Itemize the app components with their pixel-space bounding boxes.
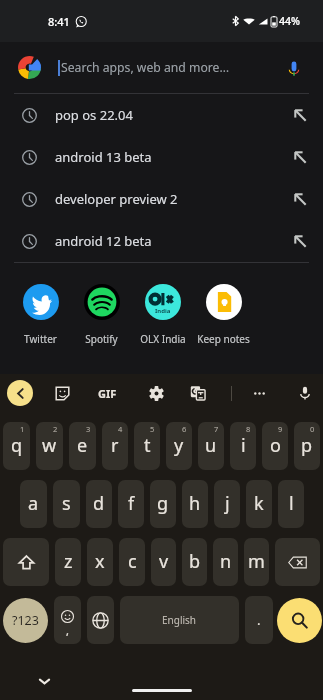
button[interactable]: y bbox=[166, 422, 192, 470]
staticText: OLX India bbox=[140, 332, 186, 346]
staticText: o bbox=[270, 433, 281, 458]
button[interactable]: x bbox=[87, 538, 113, 586]
staticText: p bbox=[301, 433, 313, 458]
button[interactable]: android 13 beta bbox=[0, 136, 323, 178]
staticText: r bbox=[111, 433, 119, 458]
button[interactable]: l bbox=[278, 480, 304, 528]
button[interactable]: e bbox=[69, 422, 96, 470]
button[interactable]: Emoji bbox=[54, 596, 81, 644]
staticText: b bbox=[189, 549, 201, 574]
button[interactable]: pop os 22.04 bbox=[0, 94, 323, 136]
staticText: e bbox=[77, 433, 88, 458]
button[interactable]: Search bbox=[277, 598, 322, 643]
button[interactable]: Keep notes bbox=[193, 284, 254, 346]
button[interactable]: GIF bbox=[98, 380, 117, 406]
button[interactable]: i bbox=[230, 422, 256, 470]
button[interactable]: Fill in android 13 beta bbox=[285, 142, 315, 172]
staticText: 5 bbox=[150, 424, 155, 434]
button[interactable]: a bbox=[20, 480, 47, 528]
staticText: v bbox=[159, 549, 169, 574]
button[interactable]: Shift bbox=[3, 538, 49, 586]
button[interactable]: . bbox=[245, 596, 273, 644]
staticText: l bbox=[289, 491, 294, 516]
staticText: n bbox=[220, 549, 232, 574]
staticText: k bbox=[254, 491, 264, 516]
staticText: m bbox=[248, 549, 265, 574]
staticText: . bbox=[257, 611, 261, 629]
button[interactable]: More options bbox=[246, 380, 272, 406]
button[interactable]: c bbox=[119, 538, 145, 586]
staticText: f bbox=[128, 491, 135, 516]
button[interactable]: q bbox=[3, 422, 30, 470]
staticText: u bbox=[205, 433, 217, 458]
staticText: android 13 beta bbox=[55, 148, 152, 166]
button[interactable]: ?123 bbox=[3, 598, 48, 643]
button[interactable]: Delete bbox=[275, 538, 320, 586]
button[interactable]: z bbox=[55, 538, 81, 586]
button[interactable]: Fill in pop os 22.04 bbox=[285, 100, 315, 130]
button[interactable]: Fill in android 12 beta bbox=[285, 226, 315, 256]
button[interactable]: developer preview 2 bbox=[0, 178, 323, 220]
button[interactable]: Fill in developer preview 2 bbox=[285, 184, 315, 214]
button[interactable]: w bbox=[36, 422, 63, 470]
button[interactable]: s bbox=[53, 480, 80, 528]
button[interactable]: k bbox=[246, 480, 272, 528]
staticText: English bbox=[162, 613, 197, 627]
button[interactable]: Change language bbox=[87, 596, 114, 644]
button[interactable]: o bbox=[262, 422, 288, 470]
button[interactable]: Hide keyboard bbox=[31, 668, 57, 694]
button[interactable]: n bbox=[213, 538, 238, 586]
button[interactable]: b bbox=[182, 538, 207, 586]
staticText: h bbox=[189, 491, 201, 516]
staticText: developer preview 2 bbox=[55, 190, 178, 208]
staticText: 9 bbox=[278, 424, 283, 434]
staticText: Search apps, web and more… bbox=[61, 59, 230, 76]
button[interactable]: u bbox=[198, 422, 224, 470]
staticText: Spotify bbox=[85, 332, 118, 346]
button[interactable]: Voice search bbox=[281, 55, 307, 81]
staticText: android 12 beta bbox=[55, 232, 152, 250]
staticText: i bbox=[241, 433, 246, 458]
staticText: Keep notes bbox=[197, 332, 250, 346]
staticText: 1 bbox=[20, 424, 25, 434]
staticText: j bbox=[225, 491, 230, 516]
button[interactable]: Back bbox=[7, 380, 33, 406]
button[interactable]: f bbox=[118, 480, 144, 528]
staticText: GIF bbox=[98, 386, 117, 401]
button[interactable]: android 12 beta bbox=[0, 220, 323, 262]
button[interactable]: j bbox=[214, 480, 240, 528]
staticText: 3 bbox=[86, 424, 91, 434]
button[interactable]: Settings bbox=[143, 380, 169, 406]
button[interactable]: Stickers bbox=[49, 380, 75, 406]
staticText: , bbox=[66, 623, 69, 638]
button[interactable]: r bbox=[102, 422, 128, 470]
staticText: c bbox=[128, 549, 137, 574]
button[interactable]: h bbox=[182, 480, 208, 528]
staticText: z bbox=[64, 549, 73, 574]
button[interactable]: English bbox=[120, 596, 239, 644]
button[interactable]: Search apps, web and more… bbox=[0, 42, 323, 93]
staticText: s bbox=[62, 491, 71, 516]
staticText: 2 bbox=[53, 424, 58, 434]
button[interactable]: m bbox=[244, 538, 269, 586]
staticText: y bbox=[174, 433, 184, 458]
button[interactable]: Voice input bbox=[292, 380, 318, 406]
button[interactable]: g bbox=[150, 480, 176, 528]
button[interactable]: v bbox=[151, 538, 176, 586]
staticText: 44% bbox=[279, 14, 300, 28]
button[interactable]: d bbox=[86, 480, 112, 528]
button[interactable]: Spotify bbox=[71, 284, 132, 346]
button[interactable]: Twitter bbox=[10, 284, 71, 346]
staticText: 8:41 bbox=[48, 14, 70, 29]
staticText: w bbox=[42, 433, 57, 458]
staticText: 8 bbox=[246, 424, 251, 434]
button[interactable]: p bbox=[294, 422, 320, 470]
staticText: x bbox=[95, 549, 105, 574]
staticText: Twitter bbox=[24, 332, 57, 346]
button[interactable]: t bbox=[134, 422, 160, 470]
button[interactable]: Translate bbox=[185, 380, 211, 406]
button[interactable]: India bbox=[132, 284, 193, 346]
staticText: g bbox=[157, 491, 169, 516]
staticText: 6 bbox=[182, 424, 187, 434]
staticText: 7 bbox=[214, 424, 219, 434]
